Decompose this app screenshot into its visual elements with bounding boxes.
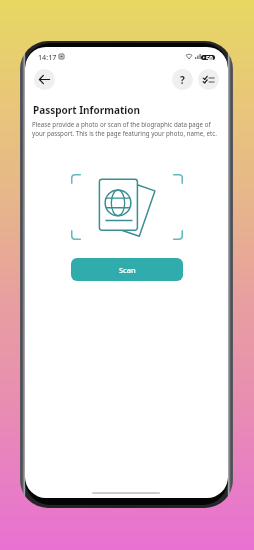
staticText: ? (180, 73, 185, 87)
button[interactable]: Back (34, 69, 55, 90)
button[interactable]: Help (172, 69, 193, 90)
staticText: Scan (119, 265, 136, 275)
staticText: Passport Information (33, 103, 141, 117)
staticText: 50 (206, 54, 213, 62)
button[interactable]: Checklist (198, 69, 219, 90)
button[interactable]: Scan (71, 258, 183, 281)
staticText: Please provide a photo or scan of the bi… (32, 120, 220, 138)
staticText: 14:17 (38, 52, 57, 62)
